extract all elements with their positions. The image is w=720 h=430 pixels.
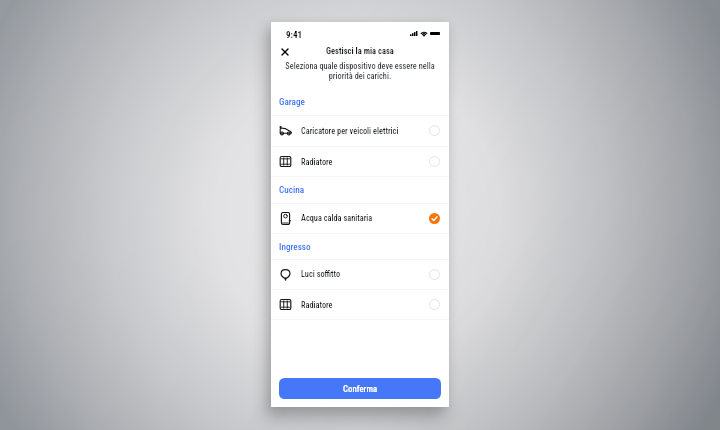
- staticText: Conferma: [343, 384, 378, 394]
- button[interactable]: Radiatore: [271, 146, 449, 177]
- button[interactable]: Radiatore: [271, 289, 449, 320]
- staticText: Luci soffitto: [301, 269, 341, 279]
- staticText: Garage: [279, 96, 305, 107]
- staticText: Radiatore: [301, 300, 333, 310]
- staticText: Acqua calda sanitaria: [301, 213, 373, 223]
- button[interactable]: Conferma: [279, 378, 441, 399]
- button[interactable]: Luci soffitto: [271, 259, 449, 289]
- staticText: Radiatore: [301, 157, 333, 167]
- staticText: Caricatore per veicoli elettrici: [301, 126, 399, 136]
- staticText: 9:41: [286, 30, 303, 41]
- staticText: Ingresso: [279, 241, 311, 252]
- button[interactable]: Acqua calda sanitaria: [271, 203, 449, 233]
- staticText: Gestisci la mia casa: [326, 46, 394, 56]
- button[interactable]: Caricatore per veicoli elettrici: [271, 115, 449, 146]
- button[interactable]: Close: [276, 43, 294, 61]
- staticText: Seleziona quale dispositivo deve essere …: [283, 61, 437, 81]
- staticText: Cucina: [279, 184, 305, 195]
